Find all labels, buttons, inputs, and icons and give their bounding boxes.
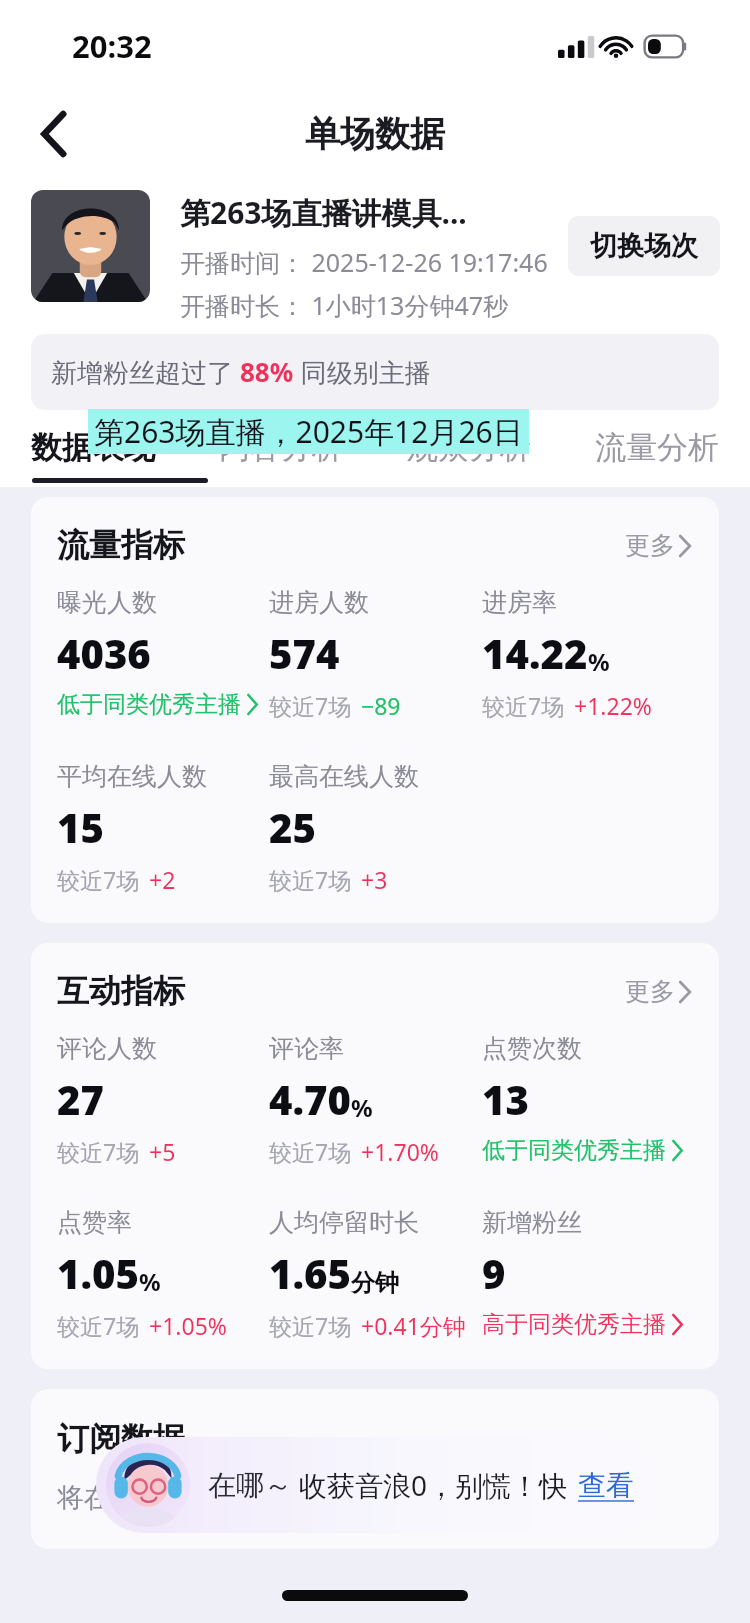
button[interactable]: 新增粉丝超过了 bbox=[31, 334, 719, 410]
staticText: 流量指标 bbox=[57, 525, 185, 565]
staticText: 点赞次数 bbox=[482, 1033, 582, 1064]
staticText: 14.22 bbox=[482, 626, 588, 680]
staticText: +1.05% bbox=[149, 1310, 227, 1341]
staticText: 开播时长： 1小时13分钟47秒 bbox=[180, 288, 509, 322]
button[interactable]: 点赞次数 bbox=[482, 1033, 683, 1165]
staticText: 在哪～ bbox=[208, 1468, 292, 1503]
staticText: 收获音浪0，别慌！快 bbox=[299, 1466, 568, 1504]
staticText: +1.70% bbox=[361, 1136, 439, 1167]
staticText: 将在消息大师为您定期推送您的直播数据报告 bbox=[57, 1481, 597, 1515]
button[interactable]: 更多 bbox=[621, 526, 695, 565]
staticText: 更多 bbox=[625, 976, 675, 1007]
button[interactable]: 返回 bbox=[22, 102, 86, 166]
staticText: 流量分析 bbox=[595, 428, 719, 467]
button[interactable]: 曝光人数 bbox=[57, 587, 258, 719]
staticText: 高于同类优秀主播 bbox=[482, 1310, 666, 1339]
staticText: +5 bbox=[149, 1136, 176, 1167]
staticText: 27 bbox=[57, 1072, 104, 1126]
staticText: +1.22% bbox=[574, 690, 652, 721]
button[interactable]: 评论率 bbox=[269, 1033, 439, 1167]
staticText: 分钟 bbox=[351, 1268, 399, 1298]
button[interactable]: 点赞率 bbox=[57, 1207, 227, 1341]
staticText: 低于同类优秀主播 bbox=[57, 690, 241, 719]
staticText: 低于同类优秀主播 bbox=[482, 1136, 666, 1165]
staticText: 新增粉丝超过了 bbox=[51, 354, 240, 390]
button[interactable]: 数据表现 bbox=[31, 418, 155, 477]
staticText: 13 bbox=[482, 1072, 529, 1126]
staticText: 进房率 bbox=[482, 587, 557, 618]
staticText: 更多 bbox=[625, 530, 675, 561]
staticText: 较近7场 bbox=[57, 1136, 140, 1167]
staticText: 4036 bbox=[57, 626, 151, 680]
button[interactable]: 更多 bbox=[621, 972, 695, 1011]
staticText: 较近7场 bbox=[482, 690, 565, 721]
button[interactable]: 最高在线人数 bbox=[269, 761, 419, 895]
staticText: 单场数据 bbox=[305, 112, 445, 156]
staticText: 15 bbox=[57, 800, 104, 854]
staticText: 人均停留时长 bbox=[269, 1207, 419, 1238]
staticText: 9 bbox=[482, 1246, 506, 1300]
staticText: 4.70 bbox=[269, 1072, 351, 1126]
staticText: 最高在线人数 bbox=[269, 761, 419, 792]
button[interactable]: 人均停留时长 bbox=[269, 1207, 466, 1341]
button[interactable]: 进房率 bbox=[482, 587, 652, 721]
staticText: % bbox=[139, 1265, 161, 1298]
staticText: 25 bbox=[269, 800, 316, 854]
staticText: 查看 bbox=[578, 1468, 634, 1503]
button[interactable]: 观众分析 bbox=[407, 418, 531, 477]
staticText: +3 bbox=[361, 864, 388, 895]
button[interactable]: 内容分析 bbox=[219, 418, 343, 477]
staticText: 574 bbox=[269, 626, 340, 680]
staticText: % bbox=[351, 1091, 373, 1124]
staticText: 第263场直播讲模具... bbox=[180, 192, 467, 233]
button[interactable]: 进房人数 bbox=[269, 587, 401, 721]
staticText: 1.65 bbox=[269, 1246, 351, 1300]
button[interactable]: 切换场次 bbox=[568, 216, 720, 276]
staticText: 较近7场 bbox=[57, 864, 140, 895]
staticText: +0.41分钟 bbox=[361, 1310, 466, 1341]
staticText: 88% bbox=[240, 354, 294, 389]
staticText: −89 bbox=[361, 690, 401, 721]
staticText: 点赞率 bbox=[57, 1207, 132, 1238]
staticText: 同级别主播 bbox=[294, 354, 431, 390]
staticText: 较近7场 bbox=[269, 864, 352, 895]
staticText: 较近7场 bbox=[269, 690, 352, 721]
button[interactable]: 主播头像 bbox=[31, 190, 150, 302]
staticText: 数据表现 bbox=[31, 428, 155, 467]
staticText: 第263场直播，2025年12月26日 bbox=[94, 411, 523, 452]
staticText: +2 bbox=[149, 864, 176, 895]
staticText: 曝光人数 bbox=[57, 587, 157, 618]
staticText: 进房人数 bbox=[269, 587, 369, 618]
button[interactable]: 流量分析 bbox=[595, 418, 719, 477]
staticText: 订阅数据 bbox=[57, 1419, 185, 1459]
staticText: 评论率 bbox=[269, 1033, 344, 1064]
staticText: 评论人数 bbox=[57, 1033, 157, 1064]
staticText: 1.05 bbox=[57, 1246, 139, 1300]
button[interactable]: 评论人数 bbox=[57, 1033, 176, 1167]
staticText: 20:32 bbox=[72, 25, 152, 67]
staticText: 较近7场 bbox=[269, 1136, 352, 1167]
button[interactable]: 新增粉丝 bbox=[482, 1207, 683, 1339]
button[interactable]: 订阅数据 bbox=[31, 1389, 719, 1549]
staticText: 观众分析 bbox=[407, 428, 531, 467]
staticText: 较近7场 bbox=[57, 1310, 140, 1341]
staticText: 平均在线人数 bbox=[57, 761, 207, 792]
staticText: 切换场次 bbox=[590, 229, 698, 263]
staticText: 内容分析 bbox=[219, 428, 343, 467]
staticText: 新增粉丝 bbox=[482, 1207, 582, 1238]
staticText: 开播时间： 2025-12-26 19:17:46 bbox=[180, 245, 548, 279]
staticText: 互动指标 bbox=[57, 971, 185, 1011]
staticText: 较近7场 bbox=[269, 1310, 352, 1341]
button[interactable]: 平均在线人数 bbox=[57, 761, 207, 895]
staticText: % bbox=[588, 645, 610, 678]
button[interactable]: 在哪～ bbox=[96, 1437, 658, 1533]
